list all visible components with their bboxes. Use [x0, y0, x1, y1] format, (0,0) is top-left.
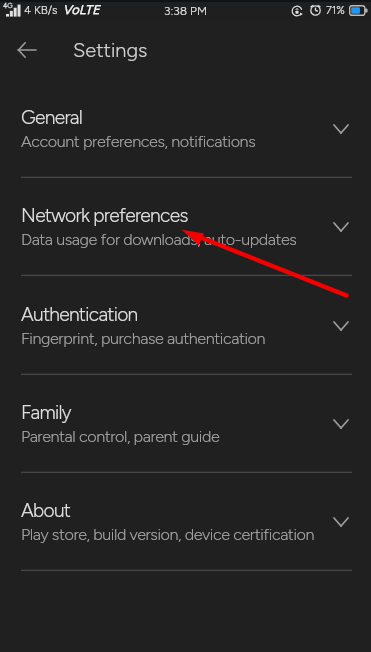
staticText: Play store, build version, device certif… — [21, 525, 315, 544]
button[interactable]: Family — [0, 375, 371, 473]
staticText: 71% — [326, 4, 345, 17]
staticText: General — [21, 106, 83, 129]
button[interactable]: General — [0, 80, 371, 178]
staticText: Data usage for downloads, auto-updates — [21, 230, 297, 249]
staticText: 3:38 PM — [164, 4, 208, 18]
staticText: Network preferences — [21, 204, 188, 227]
staticText: Settings — [73, 38, 148, 62]
staticText: 4 KB/s — [24, 3, 58, 17]
staticText: Authentication — [21, 303, 138, 326]
staticText: Parental control, parent guide — [21, 427, 220, 446]
staticText: About — [21, 499, 71, 522]
button[interactable]: About — [0, 473, 371, 571]
button[interactable]: Back — [8, 31, 46, 69]
staticText: Family — [21, 401, 71, 424]
staticText: 4G — [3, 1, 13, 9]
staticText: Account preferences, notifications — [21, 132, 256, 151]
staticText: Fingerprint, purchase authentication — [21, 329, 266, 348]
staticText: VoLTE — [63, 2, 100, 17]
button[interactable]: Network preferences — [0, 178, 371, 276]
button[interactable]: Authentication — [0, 277, 371, 375]
